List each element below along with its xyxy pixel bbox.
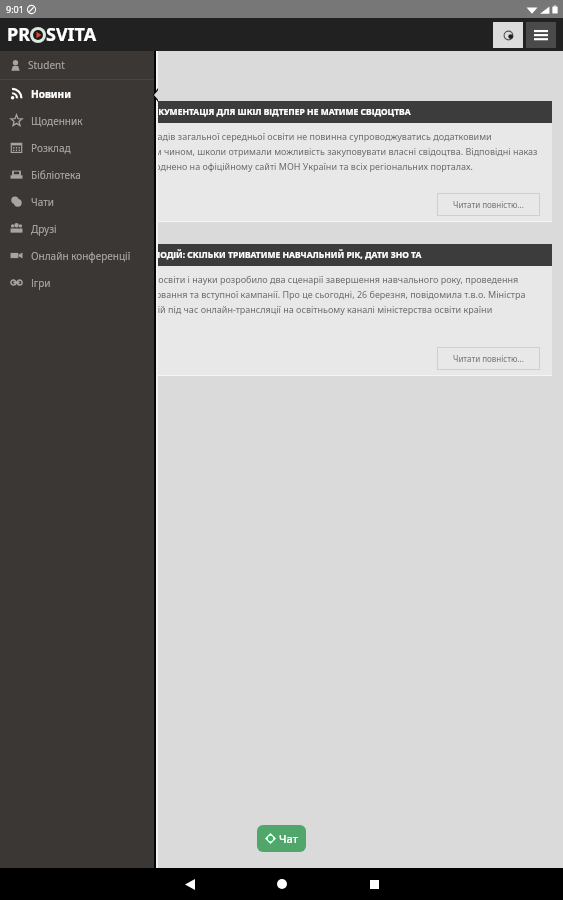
staticText: Онлайн конференції — [31, 249, 131, 263]
button[interactable]: Читати повністю... — [437, 347, 540, 370]
button[interactable]: Student — [0, 51, 154, 79]
staticText: Чати — [31, 195, 55, 209]
staticText: Під час карантину Міністерство освіти і … — [18, 273, 542, 315]
staticText: Читати повністю... — [453, 353, 524, 364]
button[interactable]: Back — [170, 868, 210, 900]
staticText: Ігри — [31, 276, 51, 290]
button[interactable]: Новини — [0, 80, 154, 107]
staticText: Читати повністю... — [453, 199, 524, 210]
button[interactable]: Розклад — [0, 134, 154, 161]
button[interactable]: Profile — [493, 22, 523, 48]
staticText: Розклад — [31, 141, 71, 155]
button[interactable]: Home — [262, 868, 302, 900]
button[interactable]: Recents — [354, 868, 394, 900]
staticText: Друзі — [31, 222, 57, 236]
button[interactable]: МОН ПОВІДОМИВ: ШКІЛЬНА ДОКУМЕНТАЦІЯ ДЛЯ … — [11, 101, 552, 222]
staticText: PR — [7, 22, 30, 47]
button[interactable]: Бібліотека — [0, 161, 154, 188]
button[interactable]: Онлайн конференції — [0, 242, 154, 269]
button[interactable]: Друзі — [0, 215, 154, 242]
staticText: Новини — [31, 87, 71, 101]
button[interactable]: Чати — [0, 188, 154, 215]
button[interactable]: Щоденник — [0, 107, 154, 134]
staticText: Student — [28, 58, 65, 72]
staticText: SVITA — [46, 22, 97, 47]
staticText: Шкільна документація для закладів загаль… — [18, 130, 542, 172]
button[interactable]: Чат — [257, 825, 306, 852]
button[interactable]: Menu — [526, 22, 556, 48]
staticText: Щоденник — [31, 114, 83, 128]
button[interactable]: Ігри — [0, 269, 154, 296]
staticText: Чат — [279, 831, 298, 846]
staticText: 9:01 — [6, 3, 24, 15]
button[interactable]: Читати повністю... — [437, 193, 540, 216]
button[interactable]: АНОНСИ ВАЖЛИВИХ ОСВІТНІХ ПОДІЙ: СКІЛЬКИ … — [11, 244, 552, 376]
staticText: АНОНСИ ВАЖЛИВИХ ОСВІТНІХ ПОДІЙ: СКІЛЬКИ … — [18, 249, 422, 261]
staticText: Бібліотека — [31, 168, 81, 182]
staticText: МОН ПОВІДОМИВ: ШКІЛЬНА ДОКУМЕНТАЦІЯ ДЛЯ … — [18, 106, 411, 118]
